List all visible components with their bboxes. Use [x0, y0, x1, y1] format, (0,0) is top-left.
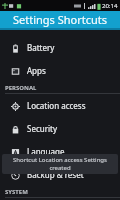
staticText: 20:14: [102, 2, 118, 10]
staticText: Security: [27, 123, 58, 134]
staticText: Language: [27, 146, 65, 157]
staticText: Apps: [27, 65, 46, 76]
staticText: Shortcut Location access Settings create…: [2, 156, 118, 172]
staticText: SYSTEM: [5, 188, 28, 196]
staticText: Battery: [27, 42, 55, 53]
staticText: Settings Shortcuts: [13, 12, 108, 27]
button[interactable]: Battery: [0, 36, 120, 59]
button[interactable]: Language: [0, 140, 120, 163]
button[interactable]: Security: [0, 117, 120, 140]
staticText: PERSONAL: [5, 84, 37, 92]
button[interactable]: Settings Shortcuts: [0, 11, 120, 28]
staticText: Location access: [27, 100, 86, 111]
button[interactable]: Backup & reset: [0, 163, 120, 186]
button[interactable]: Apps: [0, 59, 120, 82]
staticText: Backup & reset: [27, 169, 84, 180]
button[interactable]: Location access: [0, 94, 120, 117]
